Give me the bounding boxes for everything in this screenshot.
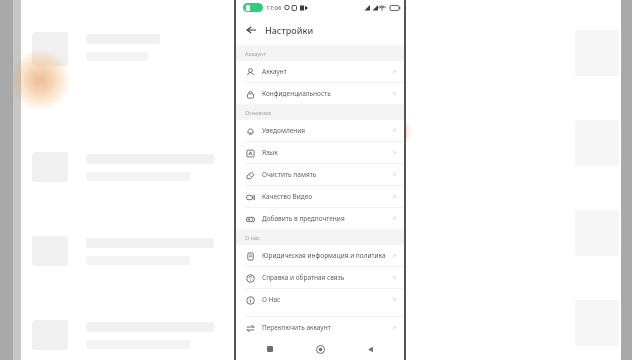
staticText: Настройки — [265, 24, 314, 36]
staticText: Уведомления — [262, 126, 392, 135]
staticText: Переключить аккаунт — [262, 323, 392, 332]
staticText: Аккаунт — [245, 50, 266, 57]
staticText: Добавить в предпочтения — [262, 214, 392, 223]
staticText: О Нас — [262, 295, 392, 304]
staticText: Качество Видео — [262, 192, 392, 201]
button[interactable]: О Нас — [236, 289, 404, 310]
button[interactable]: Качество Видео — [236, 186, 404, 207]
button[interactable]: Конфиденциальность — [236, 83, 404, 104]
staticText: Очистить память — [262, 170, 392, 179]
staticText: Аккаунт — [262, 67, 392, 76]
button[interactable]: Recents — [262, 341, 278, 357]
staticText: 17:06 — [266, 4, 282, 12]
staticText: Конфиденциальность — [262, 89, 392, 98]
staticText: Основное — [245, 109, 272, 116]
button[interactable]: Язык — [236, 142, 404, 163]
button[interactable]: Переключить аккаунт — [236, 317, 404, 338]
button[interactable]: Уведомления — [236, 120, 404, 141]
button[interactable]: Back — [241, 20, 261, 40]
button[interactable]: Back — [362, 341, 378, 357]
button[interactable]: Аккаунт — [236, 61, 404, 82]
staticText: Язык — [262, 148, 392, 157]
staticText: Юридическая информация и политика — [262, 251, 392, 260]
button[interactable]: Добавить в предпочтения — [236, 208, 404, 229]
staticText: О нас — [245, 234, 260, 241]
button[interactable]: Home — [312, 341, 328, 357]
button[interactable]: Юридическая информация и политика — [236, 245, 404, 266]
button[interactable]: Справка и обратная связь — [236, 267, 404, 288]
staticText: Справка и обратная связь — [262, 273, 392, 282]
button[interactable]: Очистить память — [236, 164, 404, 185]
